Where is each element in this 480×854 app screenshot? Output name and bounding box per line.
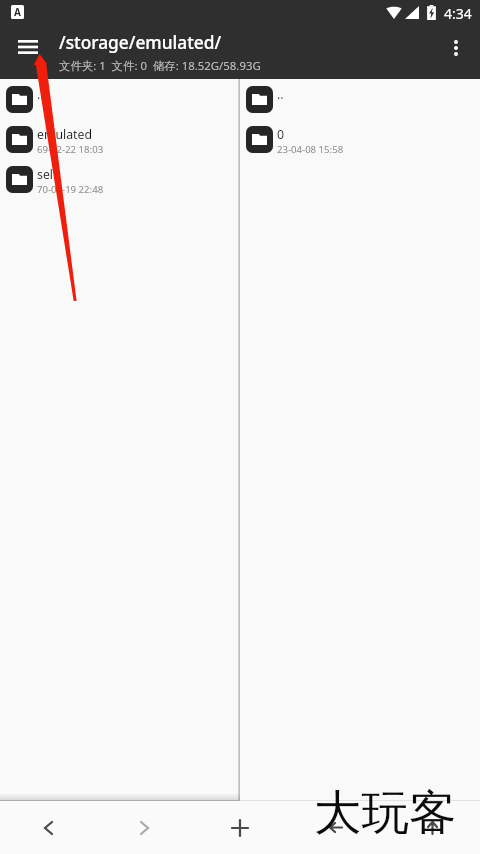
staticText: .. (37, 86, 44, 103)
button[interactable]: .. (0, 79, 238, 119)
staticText: /storage/emulated/ (59, 31, 222, 55)
button[interactable]: .. (240, 79, 480, 119)
button[interactable]: self (0, 159, 238, 199)
staticText: emulated (37, 126, 93, 143)
staticText: 69-12-22 18:03 (37, 143, 104, 156)
button[interactable]: New (192, 801, 288, 854)
button[interactable]: emulated (0, 119, 238, 159)
staticText: .. (277, 86, 284, 103)
staticText: 70-01-19 22:48 (37, 183, 104, 196)
button[interactable]: Up (384, 801, 480, 854)
staticText: 4:34 (444, 4, 472, 23)
staticText: self (37, 166, 58, 183)
button[interactable]: More options (432, 28, 480, 67)
staticText: A (14, 5, 21, 19)
staticText: 大玩客 (314, 783, 457, 843)
staticText: 23-04-08 15:58 (277, 143, 344, 156)
button[interactable]: Undo (288, 801, 384, 854)
staticText: 0 (277, 126, 285, 143)
button[interactable]: Back (0, 801, 96, 854)
button[interactable]: 0 (240, 119, 480, 159)
staticText: 文件夹: 1 文件: 0 储存: 18.52G/58.93G (59, 58, 261, 74)
button[interactable]: Menu (5, 27, 53, 66)
button[interactable]: Forward (96, 801, 192, 854)
